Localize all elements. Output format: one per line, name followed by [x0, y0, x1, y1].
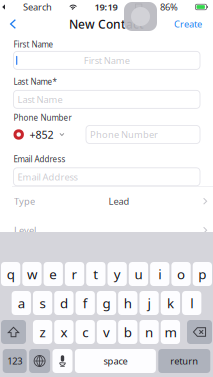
button[interactable]: x	[54, 320, 73, 344]
staticText: m	[164, 323, 176, 341]
button[interactable]: h	[118, 291, 137, 315]
staticText: i	[158, 265, 161, 283]
staticText: n	[145, 323, 153, 341]
staticText: +852	[30, 127, 54, 142]
button[interactable]: Type	[0, 187, 213, 216]
staticText: 19:19	[94, 1, 117, 13]
button[interactable]: i	[150, 262, 169, 286]
staticText: c	[82, 323, 88, 341]
button[interactable]: Create	[174, 14, 213, 34]
staticText: d	[60, 294, 68, 312]
staticText: Phone Number	[90, 128, 158, 141]
staticText: b	[124, 323, 132, 341]
staticText: h	[124, 294, 132, 312]
button[interactable]: 123	[3, 349, 27, 373]
staticText: x	[60, 323, 67, 341]
button[interactable]: k	[161, 291, 180, 315]
staticText: a	[18, 294, 25, 312]
button[interactable]: l	[182, 291, 201, 315]
button[interactable]: y	[107, 262, 127, 286]
button[interactable]: p	[193, 262, 212, 286]
button[interactable]: z	[33, 320, 52, 344]
staticText: y	[114, 265, 121, 283]
staticText: space	[103, 355, 127, 367]
staticText: t	[93, 265, 98, 283]
staticText: Type	[14, 195, 35, 207]
staticText: Search	[23, 1, 52, 13]
staticText: Create	[174, 18, 202, 30]
button[interactable]: w	[22, 262, 42, 286]
staticText: f	[83, 294, 88, 312]
button[interactable]: space	[75, 349, 156, 373]
button[interactable]: v	[97, 320, 116, 344]
staticText: Email Address	[13, 154, 65, 164]
staticText: p	[198, 265, 206, 283]
button[interactable]: u	[129, 262, 148, 286]
staticText: Lead	[108, 195, 129, 207]
staticText: Last Name*	[13, 76, 56, 87]
staticText: q	[7, 265, 15, 283]
button[interactable]: Back	[0, 14, 26, 34]
staticText: 86%	[160, 1, 178, 13]
button[interactable]: r	[65, 262, 84, 286]
staticText: e	[49, 265, 57, 283]
staticText: Phone Number	[13, 112, 71, 123]
staticText: k	[167, 294, 174, 312]
staticText: r	[71, 265, 77, 283]
button[interactable]: t	[86, 262, 105, 286]
button[interactable]: return	[158, 349, 210, 373]
button[interactable]: Delete	[187, 320, 212, 344]
staticText: j	[148, 294, 151, 312]
staticText: Email Address	[17, 171, 77, 183]
staticText: return	[170, 355, 198, 367]
button[interactable]: Dictate	[52, 349, 72, 373]
button[interactable]: o	[171, 262, 191, 286]
button[interactable]: s	[33, 291, 52, 315]
button[interactable]: n	[139, 320, 159, 344]
staticText: w	[27, 265, 37, 283]
staticText: First Name	[84, 54, 130, 67]
staticText: New Contact	[69, 16, 144, 32]
staticText: u	[134, 265, 142, 283]
button[interactable]: a	[12, 291, 31, 315]
button[interactable]: +852	[13, 125, 64, 144]
staticText: Level	[14, 224, 36, 236]
staticText: z	[40, 323, 46, 341]
staticText: Last Name	[17, 93, 62, 106]
button[interactable]: Shift	[1, 320, 26, 344]
staticText: v	[103, 323, 110, 341]
button[interactable]: b	[118, 320, 137, 344]
staticText: o	[177, 265, 185, 283]
staticText: s	[40, 294, 46, 312]
button[interactable]: f	[75, 291, 95, 315]
button[interactable]: Next keyboard	[29, 349, 50, 373]
button[interactable]: e	[44, 262, 63, 286]
button[interactable]: m	[161, 320, 180, 344]
staticText: 123	[7, 355, 22, 367]
button[interactable]: d	[54, 291, 73, 315]
staticText: g	[102, 294, 110, 312]
button[interactable]: Level	[0, 216, 213, 245]
button[interactable]: j	[139, 291, 159, 315]
button[interactable]: q	[1, 262, 20, 286]
button[interactable]: g	[97, 291, 116, 315]
staticText: l	[190, 294, 193, 312]
staticText: First Name	[13, 39, 53, 50]
button[interactable]: c	[75, 320, 95, 344]
